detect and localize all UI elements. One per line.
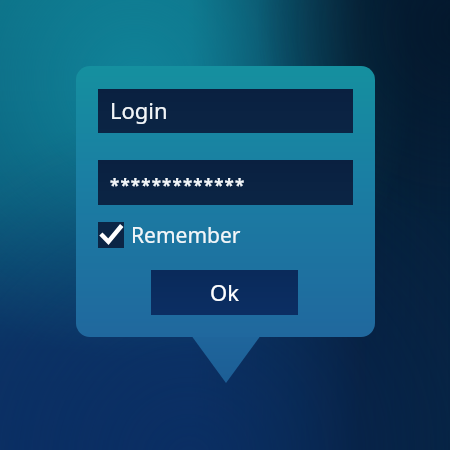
button[interactable]: Login xyxy=(98,89,353,133)
staticText: Ok xyxy=(210,277,239,307)
staticText: Login xyxy=(110,95,168,125)
button[interactable]: ************* xyxy=(98,160,353,205)
button[interactable]: Ok xyxy=(151,270,298,315)
other: Remember me checkbox, checked xyxy=(98,222,124,248)
staticText: Remember xyxy=(131,221,241,250)
staticText: ************* xyxy=(110,174,246,197)
button[interactable]: Remember me checkbox, checked xyxy=(98,220,258,252)
